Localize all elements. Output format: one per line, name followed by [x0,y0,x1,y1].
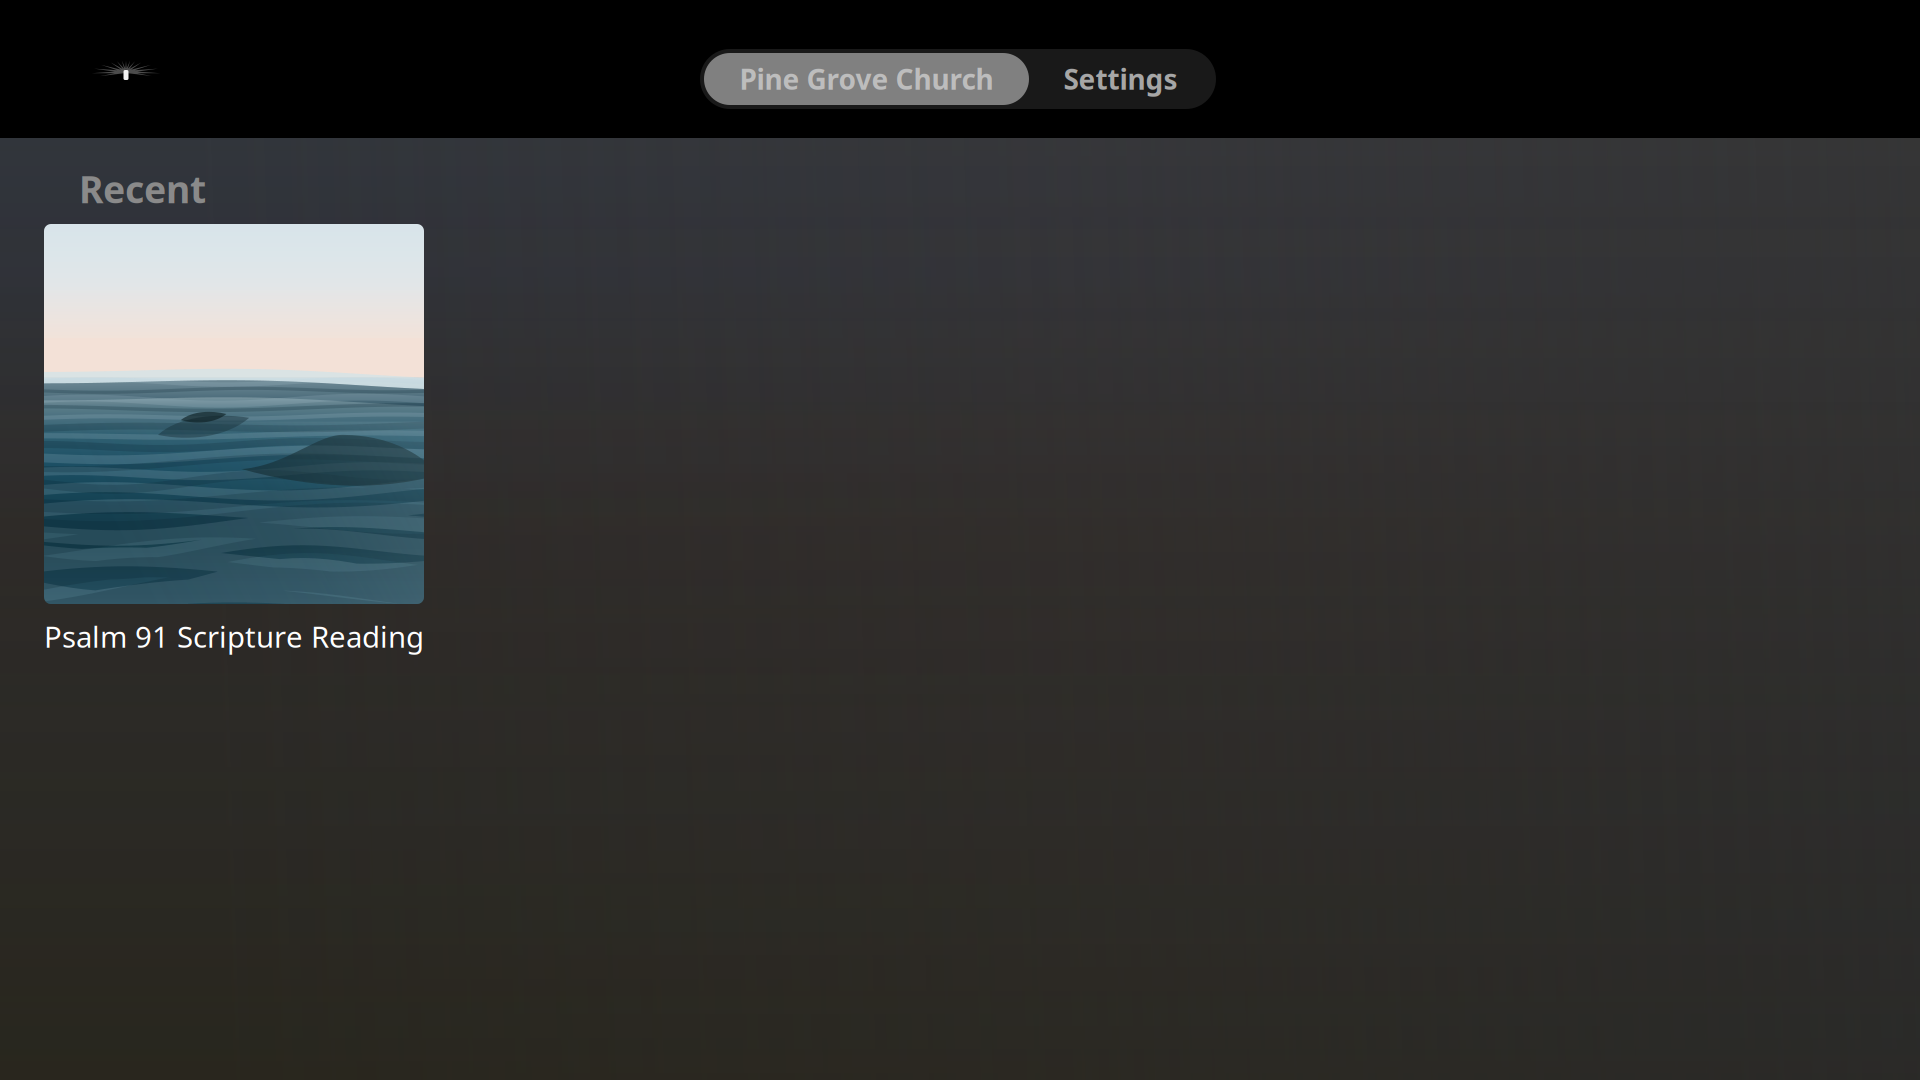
button[interactable]: Settings [1029,53,1212,105]
staticText: Recent [79,164,206,214]
staticText: Settings [1063,60,1177,98]
staticText: Pine Grove Church [739,60,993,98]
button[interactable]: Pine Grove Church home [84,56,168,90]
button[interactable]: Pine Grove Church [704,53,1029,105]
staticText: Psalm 91 Scripture Reading [44,617,424,656]
button[interactable]: Psalm 91 Scripture Reading [44,224,424,656]
